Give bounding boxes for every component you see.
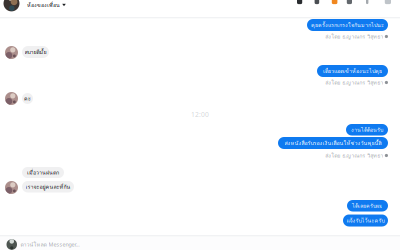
- button[interactable]: ได้เลยครับผม: [347, 200, 388, 211]
- button[interactable]: คุยครั้งแรกเกรงใจกันมากไปนะ: [307, 19, 388, 31]
- button[interactable]: ห้องของเพื่อน: [27, 0, 66, 10]
- button[interactable]: ดาวน์โหลด Messenger…: [6, 238, 206, 250]
- staticText: ส่งโดย ธ.ญาณกร วิสุทธา: [325, 151, 383, 160]
- staticText: คุยครั้งแรกเกรงใจกันมากไปนะ: [311, 21, 384, 29]
- staticText: เดี๋ยวแอดเข้าห้องนะไปคุย: [323, 67, 382, 75]
- button[interactable]: เดี๋ยวแอดเข้าห้องนะไปคุย: [317, 65, 388, 77]
- button[interactable]: คะ: [22, 93, 33, 104]
- staticText: ส่งโดย ธ.ญาณกร วิสุทธา: [325, 78, 383, 87]
- button[interactable]: แจ้งรับไว้นะครับ: [343, 214, 388, 226]
- button[interactable]: งานได้ต้อนรับ: [346, 124, 388, 135]
- staticText: สบายดีมั้ย: [24, 48, 46, 56]
- button[interactable]: เมื่อวานฝนตก: [22, 167, 64, 178]
- staticText: ดาวน์โหลด Messenger…: [20, 240, 79, 249]
- staticText: ส่งโดย ธ.ญาณกร วิสุทธา: [325, 32, 383, 41]
- button[interactable]: ส่งหนังสือรับรองเงินเดือนให้ช่วงวันพุธนี…: [278, 137, 388, 149]
- staticText: คะ: [24, 94, 31, 103]
- button[interactable]: สบายดีมั้ย: [22, 46, 49, 58]
- staticText: ส่งหนังสือรับรองเงินเดือนให้ช่วงวันพุธนี…: [284, 139, 381, 147]
- button[interactable]: เราจะอยู่คนละที่กัน: [22, 181, 74, 192]
- staticText: แจ้งรับไว้นะครับ: [346, 216, 384, 225]
- staticText: 12:00: [191, 110, 209, 119]
- staticText: เมื่อวานฝนตก: [27, 168, 59, 177]
- staticText: ได้เลยครับผม: [352, 202, 383, 210]
- staticText: ห้องของเพื่อน: [27, 1, 60, 9]
- staticText: งานได้ต้อนรับ: [351, 126, 383, 134]
- staticText: เราจะอยู่คนละที่กัน: [25, 183, 70, 191]
